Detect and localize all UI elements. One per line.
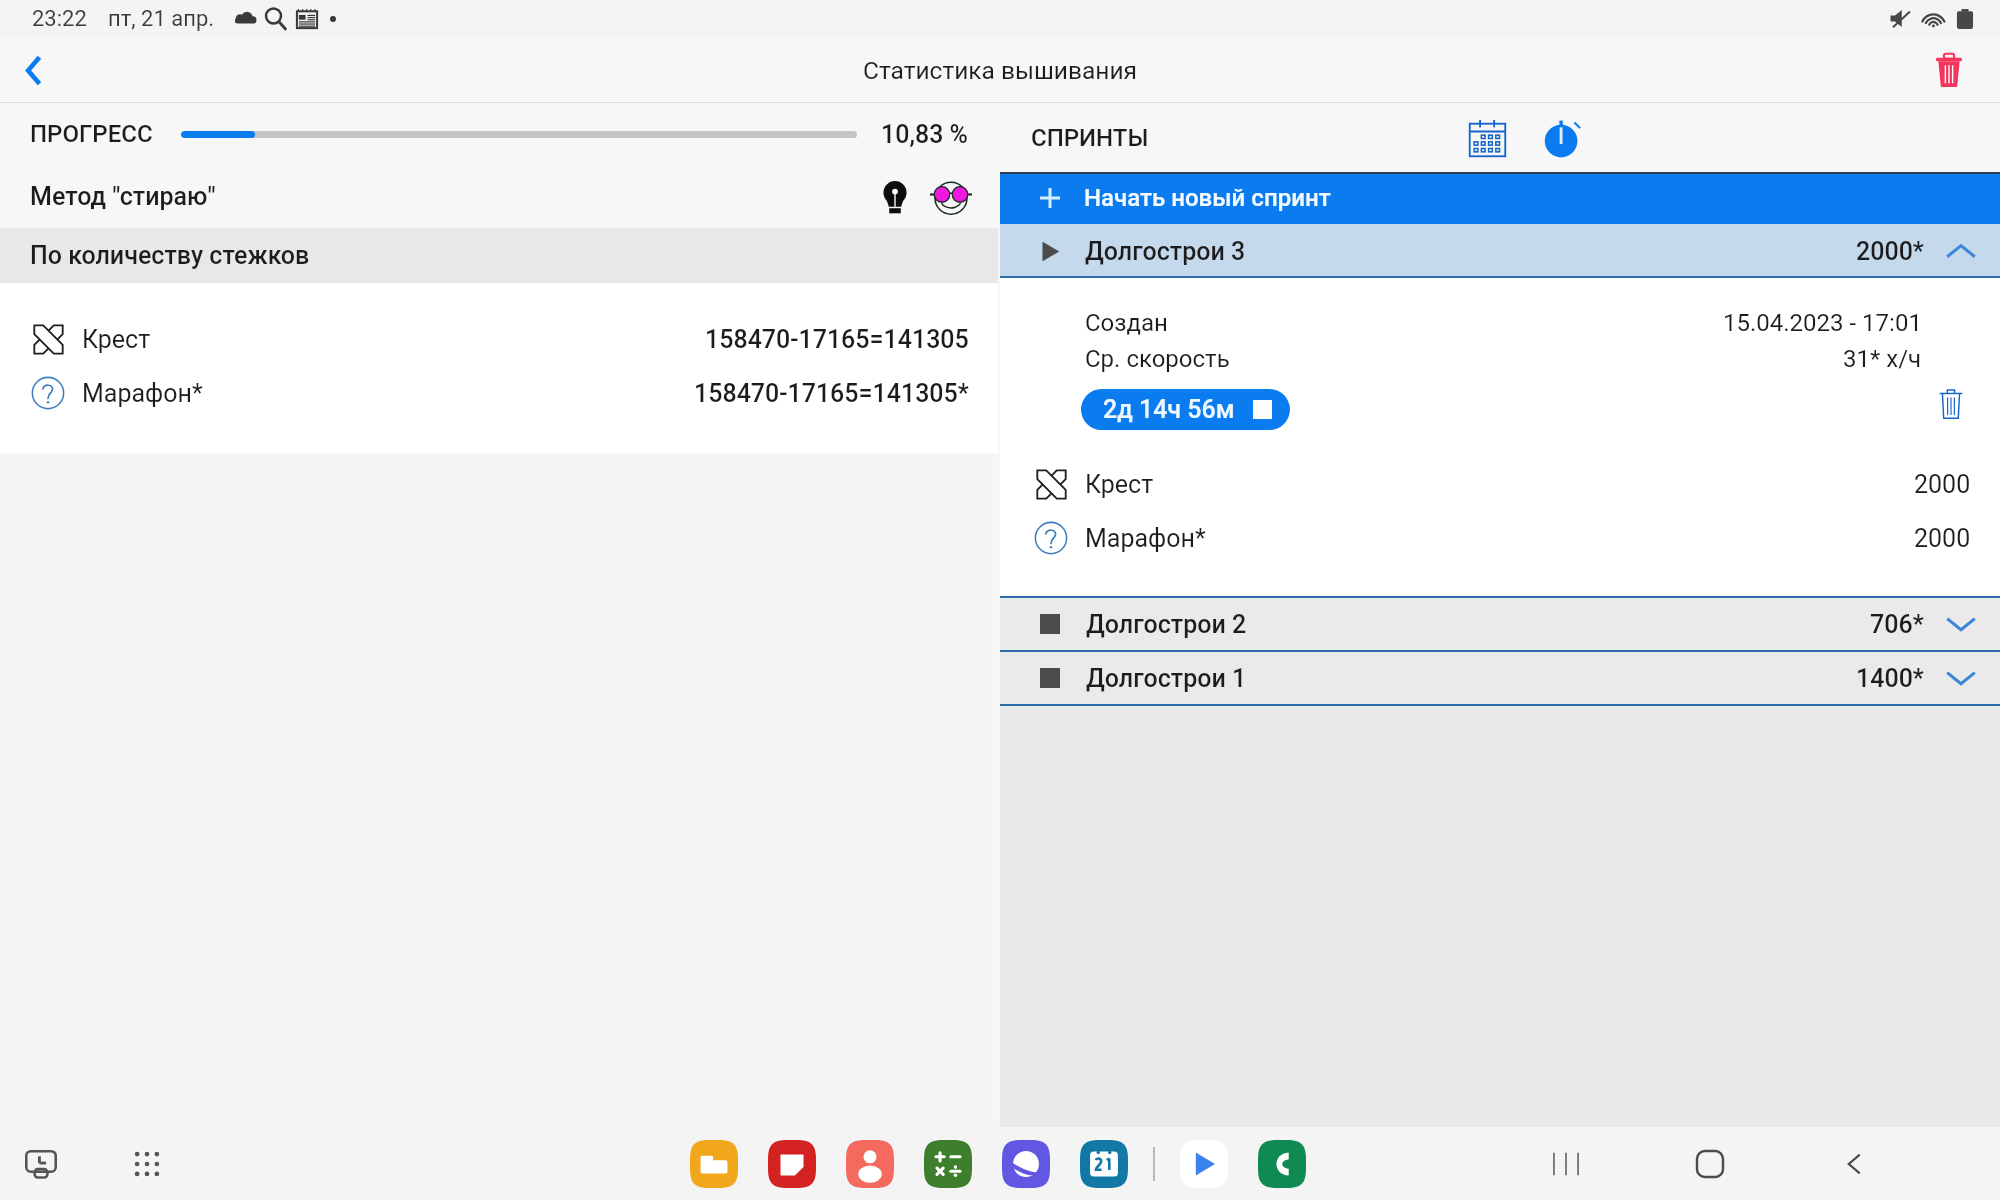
staticText: Начать новый спринт	[1084, 184, 1331, 212]
staticText: Крест	[82, 325, 151, 354]
staticText: 2000	[1914, 470, 1971, 499]
staticText: 1400*	[1856, 664, 1924, 693]
button[interactable]: Долгострои 1	[1000, 652, 2000, 704]
staticText: Марафон*	[82, 379, 203, 408]
staticText: Ср. скорость	[1085, 345, 1230, 373]
staticText: Статистика вышивания	[863, 56, 1138, 85]
button[interactable]: App	[690, 1140, 738, 1188]
button[interactable]: Home	[1681, 1135, 1739, 1193]
staticText: Долгострои 3	[1085, 237, 1246, 266]
button[interactable]: App	[924, 1140, 972, 1188]
staticText: 706*	[1870, 610, 1924, 639]
button[interactable]: Долгострои 2	[1000, 598, 2000, 650]
button[interactable]: Крест	[0, 312, 998, 366]
button[interactable]: Начать новый спринт	[1000, 172, 2000, 224]
button[interactable]: App	[1180, 1140, 1228, 1188]
button[interactable]: Марафон*	[1000, 511, 2000, 565]
button[interactable]: Timer	[1535, 110, 1591, 166]
button[interactable]: Крест	[1000, 457, 2000, 511]
staticText: Создан	[1085, 309, 1168, 337]
button[interactable]: Delete sprint	[1928, 380, 1974, 426]
staticText: 158470-17165=141305	[705, 325, 969, 354]
button[interactable]: Долгострои 3	[1000, 224, 2000, 278]
staticText: 2000	[1914, 524, 1971, 553]
button[interactable]: Apps	[122, 1139, 172, 1189]
button[interactable]: Back	[0, 37, 66, 103]
staticText: 23:22	[32, 6, 87, 32]
button[interactable]: App	[1258, 1140, 1306, 1188]
staticText: пт, 21 апр.	[108, 6, 215, 32]
staticText: Долгострои 1	[1086, 664, 1247, 693]
button[interactable]: Back	[1825, 1135, 1883, 1193]
button[interactable]: Delete	[1920, 41, 1978, 99]
button[interactable]: Mood	[926, 172, 976, 222]
staticText: 158470-17165=141305*	[694, 379, 969, 408]
staticText: 10,83 %	[881, 120, 968, 149]
staticText: Крест	[1085, 470, 1154, 499]
button[interactable]: App	[1002, 1140, 1050, 1188]
staticText: Долгострои 2	[1086, 610, 1247, 639]
staticText: 2000*	[1856, 237, 1924, 266]
button[interactable]: Марафон*	[0, 366, 998, 420]
staticText: ПРОГРЕСС	[30, 120, 153, 148]
button[interactable]: Recent apps	[1537, 1135, 1595, 1193]
staticText: Метод "стираю"	[30, 182, 216, 211]
button[interactable]: Calendar	[1459, 110, 1515, 166]
button[interactable]: Screen timeout	[16, 1139, 66, 1189]
button[interactable]: App	[1080, 1140, 1128, 1188]
button[interactable]: Hint	[870, 172, 920, 222]
button[interactable]: 2д 14ч 56м	[1081, 389, 1290, 430]
staticText: Марафон*	[1085, 524, 1206, 553]
button[interactable]: App	[768, 1140, 816, 1188]
staticText: СПРИНТЫ	[1031, 124, 1149, 152]
staticText: 31* х/ч	[1843, 345, 1922, 373]
staticText: 15.04.2023 - 17:01	[1723, 309, 1922, 337]
staticText: По количеству стежков	[30, 241, 310, 270]
staticText: 2д 14ч 56м	[1103, 395, 1235, 424]
button[interactable]: App	[846, 1140, 894, 1188]
